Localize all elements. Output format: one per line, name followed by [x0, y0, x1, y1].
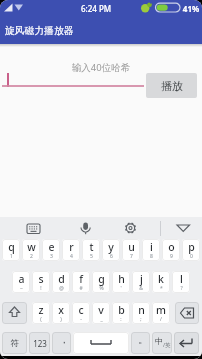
staticText: 4 [70, 253, 73, 260]
button[interactable]: q [2, 239, 20, 261]
staticText: ( [40, 316, 42, 323]
button[interactable]: p [182, 239, 200, 261]
staticText: / [160, 316, 162, 323]
staticText: % [99, 285, 104, 292]
staticText: v [98, 303, 104, 317]
staticText: q [8, 240, 15, 254]
button[interactable]: g [92, 271, 110, 293]
staticText: * [160, 285, 163, 292]
staticText: ， [59, 333, 69, 346]
button[interactable]: r [62, 239, 80, 261]
button[interactable]: b [112, 302, 130, 324]
staticText: g [98, 272, 105, 286]
button[interactable]: e [42, 239, 60, 261]
button[interactable]: f [72, 271, 90, 293]
button[interactable]: 播放 [146, 73, 197, 98]
staticText: z [38, 303, 44, 317]
staticText: f [79, 272, 83, 286]
staticText: 符 [10, 338, 19, 349]
button[interactable]: h [112, 271, 130, 293]
staticText: 1 [10, 253, 13, 260]
button[interactable]: 123 [29, 332, 50, 354]
button[interactable]: j [132, 271, 150, 293]
staticText: p [188, 240, 195, 254]
staticText: 6:24 PM [76, 3, 116, 18]
button[interactable]: d [52, 271, 70, 293]
staticText: h [118, 272, 125, 286]
staticText: n [138, 303, 145, 317]
staticText: - [80, 316, 82, 323]
button[interactable]: x [52, 302, 70, 324]
staticText: u [128, 240, 135, 254]
staticText: 中 [155, 336, 163, 346]
staticText: i [150, 240, 153, 254]
button[interactable]: v [92, 302, 110, 324]
staticText: k [158, 272, 164, 286]
staticText: b [118, 303, 125, 317]
button[interactable]: n [132, 302, 150, 324]
button[interactable]: i [142, 239, 160, 261]
staticText: # [79, 285, 83, 292]
staticText: c [78, 303, 84, 317]
button[interactable]: 中 [152, 332, 172, 354]
button[interactable]: s [32, 271, 50, 293]
button[interactable]: k [152, 271, 170, 293]
button[interactable]: ， [52, 332, 71, 354]
staticText: ' [120, 285, 122, 292]
staticText: l [180, 272, 183, 286]
staticText: ? [180, 285, 183, 292]
staticText: 3 [50, 253, 53, 260]
staticText: & [139, 285, 143, 292]
button[interactable]: o [162, 239, 180, 261]
staticText: /英 [163, 341, 171, 349]
staticText: : [120, 316, 122, 323]
staticText: 7 [130, 253, 133, 260]
staticText: 2 [30, 253, 33, 260]
staticText: 0 [190, 253, 193, 260]
staticText: 6 [110, 253, 113, 260]
staticText: ; [140, 316, 142, 323]
staticText: 5 [90, 253, 93, 260]
staticText: t [89, 240, 94, 254]
button[interactable]: l [172, 271, 190, 293]
staticText: 旋风磁力播放器 [5, 25, 125, 44]
button[interactable] [119, 217, 142, 239]
button[interactable] [2, 302, 27, 324]
button[interactable]: t [82, 239, 100, 261]
staticText: r [69, 240, 74, 254]
staticText: ! [40, 285, 42, 292]
button[interactable] [171, 217, 196, 239]
staticText: 。 [138, 333, 148, 346]
staticText: 41% [180, 3, 202, 18]
staticText: w [27, 240, 36, 254]
button[interactable]: z [32, 302, 50, 324]
button[interactable]: w [22, 239, 40, 261]
button[interactable] [74, 217, 97, 239]
button[interactable]: 符 [2, 332, 27, 354]
staticText: 9 [170, 253, 173, 260]
staticText: x [58, 303, 64, 317]
button[interactable] [73, 332, 129, 354]
staticText: 播放 [161, 79, 183, 93]
staticText: d [58, 272, 65, 286]
staticText: j [140, 272, 143, 286]
button[interactable] [174, 332, 199, 354]
staticText: o [168, 240, 175, 254]
button[interactable]: c [72, 302, 90, 324]
button[interactable]: a [12, 271, 30, 293]
staticText: _ [100, 316, 103, 323]
staticText: a [18, 272, 25, 286]
button[interactable] [175, 302, 199, 324]
button[interactable]: u [122, 239, 140, 261]
staticText: e [48, 240, 55, 254]
staticText: 8 [150, 253, 153, 260]
staticText: s [38, 272, 44, 286]
button[interactable] [21, 217, 47, 239]
button[interactable]: y [102, 239, 120, 261]
staticText: 输入40位哈希 [0, 61, 202, 79]
staticText: m [156, 303, 166, 317]
button[interactable]: m [152, 302, 170, 324]
staticText: 123 [33, 338, 47, 349]
staticText: ~ [20, 285, 23, 292]
button[interactable]: 。 [131, 332, 150, 354]
